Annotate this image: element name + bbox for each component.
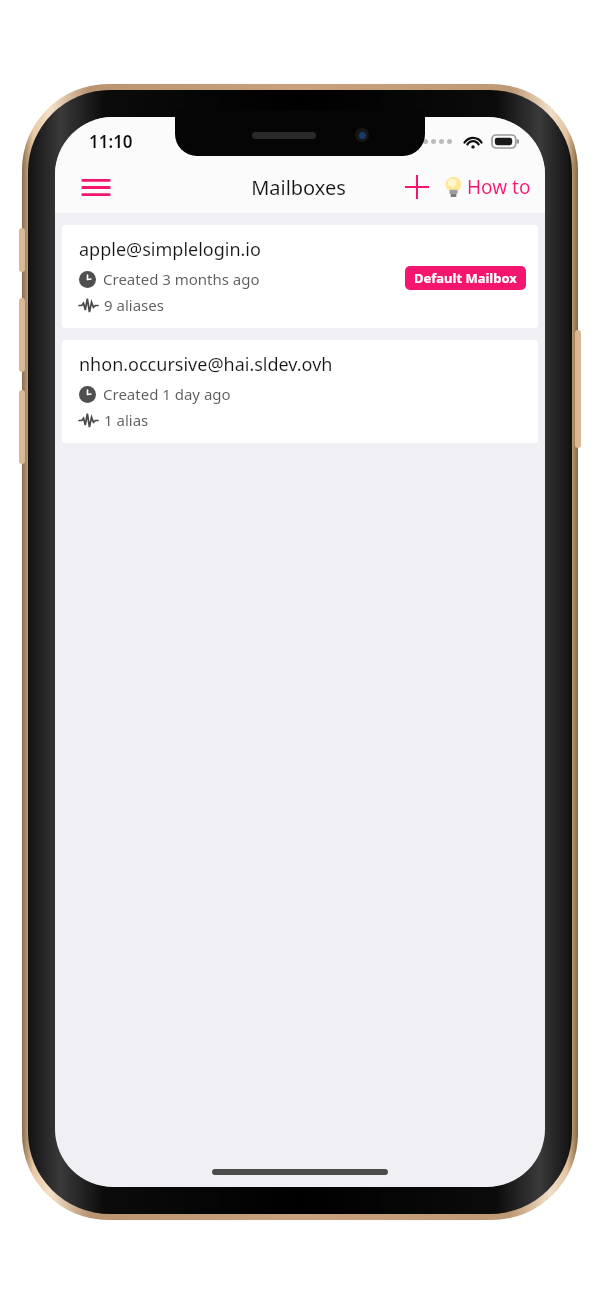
staticText: Created 1 day ago [103, 384, 231, 404]
button[interactable]: nhon.occursive@hai.sldev.ovh [62, 340, 538, 443]
button[interactable]: Menu [73, 164, 119, 210]
button[interactable]: How to [439, 168, 537, 206]
button[interactable]: Default Mailbox [405, 266, 526, 290]
staticText: Created 3 months ago [103, 269, 260, 289]
staticText: Default Mailbox [414, 269, 517, 287]
staticText: 11:10 [89, 130, 133, 153]
button[interactable]: apple@simplelogin.io [62, 225, 538, 328]
staticText: Mailboxes [251, 174, 346, 201]
staticText: How to [467, 174, 531, 200]
staticText: apple@simplelogin.io [79, 237, 261, 262]
staticText: nhon.occursive@hai.sldev.ovh [79, 352, 333, 377]
staticText: 1 alias [104, 410, 149, 430]
staticText: 9 aliases [104, 295, 164, 315]
button[interactable]: Add mailbox [395, 165, 439, 209]
